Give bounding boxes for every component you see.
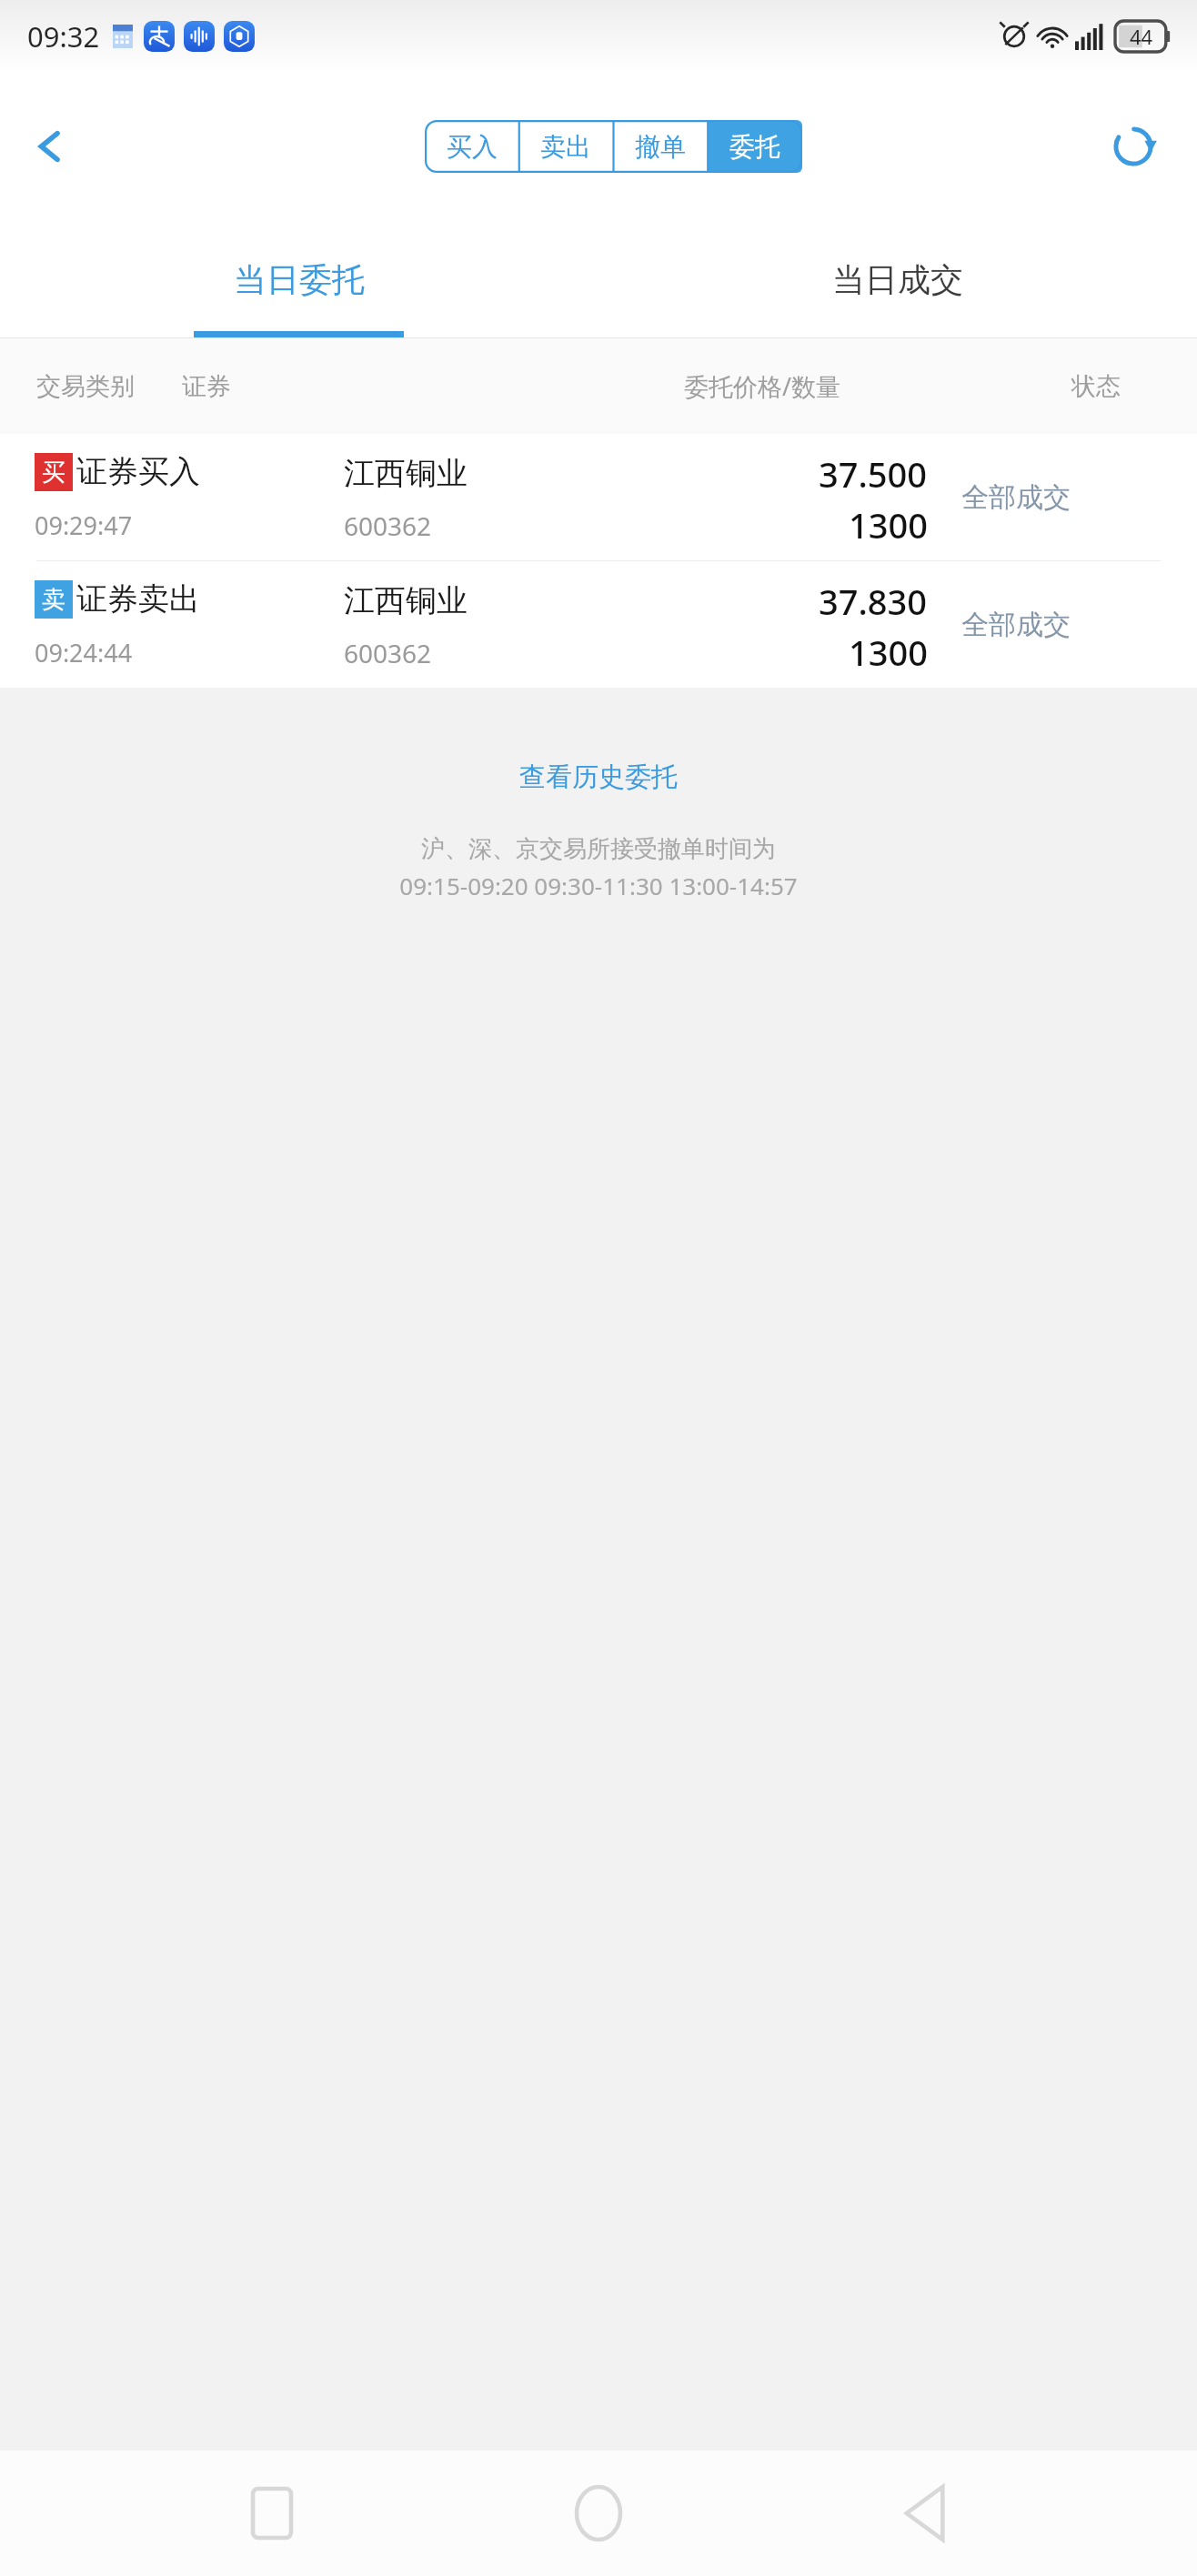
staticText: 江西铜业 (344, 581, 468, 620)
staticText: 委托 (729, 131, 780, 163)
staticText: 09:29:47 (35, 508, 133, 542)
staticText: 买 (42, 458, 65, 488)
staticText: 交易类别 (36, 371, 135, 402)
staticText: 1300 (849, 501, 928, 548)
button[interactable]: Back (870, 2459, 980, 2568)
staticText: 委托价格/数量 (684, 369, 841, 403)
staticText: 1300 (849, 629, 928, 676)
staticText: 44 (1130, 23, 1153, 50)
button[interactable]: Home (544, 2459, 653, 2568)
staticText: 买入 (447, 131, 498, 163)
staticText: 沪、深、京交易所接受撤单时间为 (421, 834, 776, 864)
button[interactable]: 委托 (708, 120, 802, 173)
staticText: 600362 (344, 636, 432, 670)
staticText: 09:32 (27, 17, 100, 55)
button[interactable]: Refresh (1091, 105, 1175, 188)
button[interactable]: 当日成交 (598, 220, 1197, 338)
staticText: 卖出 (540, 131, 591, 163)
staticText: 证券卖出 (76, 579, 200, 619)
button[interactable]: 卖 (0, 561, 1197, 688)
staticText: 证券 (182, 371, 231, 402)
staticText: 37.830 (819, 578, 928, 625)
button[interactable]: 查看历史委托 (498, 751, 699, 803)
staticText: 全部成交 (961, 608, 1071, 642)
button[interactable]: 买 (0, 434, 1197, 560)
staticText: 37.500 (819, 450, 928, 498)
button[interactable]: 撤单 (613, 120, 708, 173)
staticText: 状态 (1071, 371, 1121, 402)
staticText: 查看历史委托 (519, 760, 678, 794)
button[interactable]: 买入 (425, 120, 518, 173)
staticText: 当日成交 (832, 259, 963, 300)
staticText: 撤单 (635, 131, 686, 163)
button[interactable]: Back (9, 106, 91, 187)
staticText: 当日委托 (234, 259, 365, 300)
staticText: 09:24:44 (35, 636, 133, 669)
staticText: 江西铜业 (344, 454, 468, 493)
button[interactable]: 当日委托 (0, 220, 598, 338)
button[interactable]: 卖出 (518, 120, 613, 173)
staticText: 证券买入 (76, 452, 200, 491)
staticText: 卖 (42, 585, 65, 615)
staticText: 09:15-09:20 09:30-11:30 13:00-14:57 (399, 870, 798, 901)
staticText: 全部成交 (961, 480, 1071, 515)
button[interactable]: Recent apps (217, 2459, 327, 2568)
staticText: 600362 (344, 508, 432, 543)
